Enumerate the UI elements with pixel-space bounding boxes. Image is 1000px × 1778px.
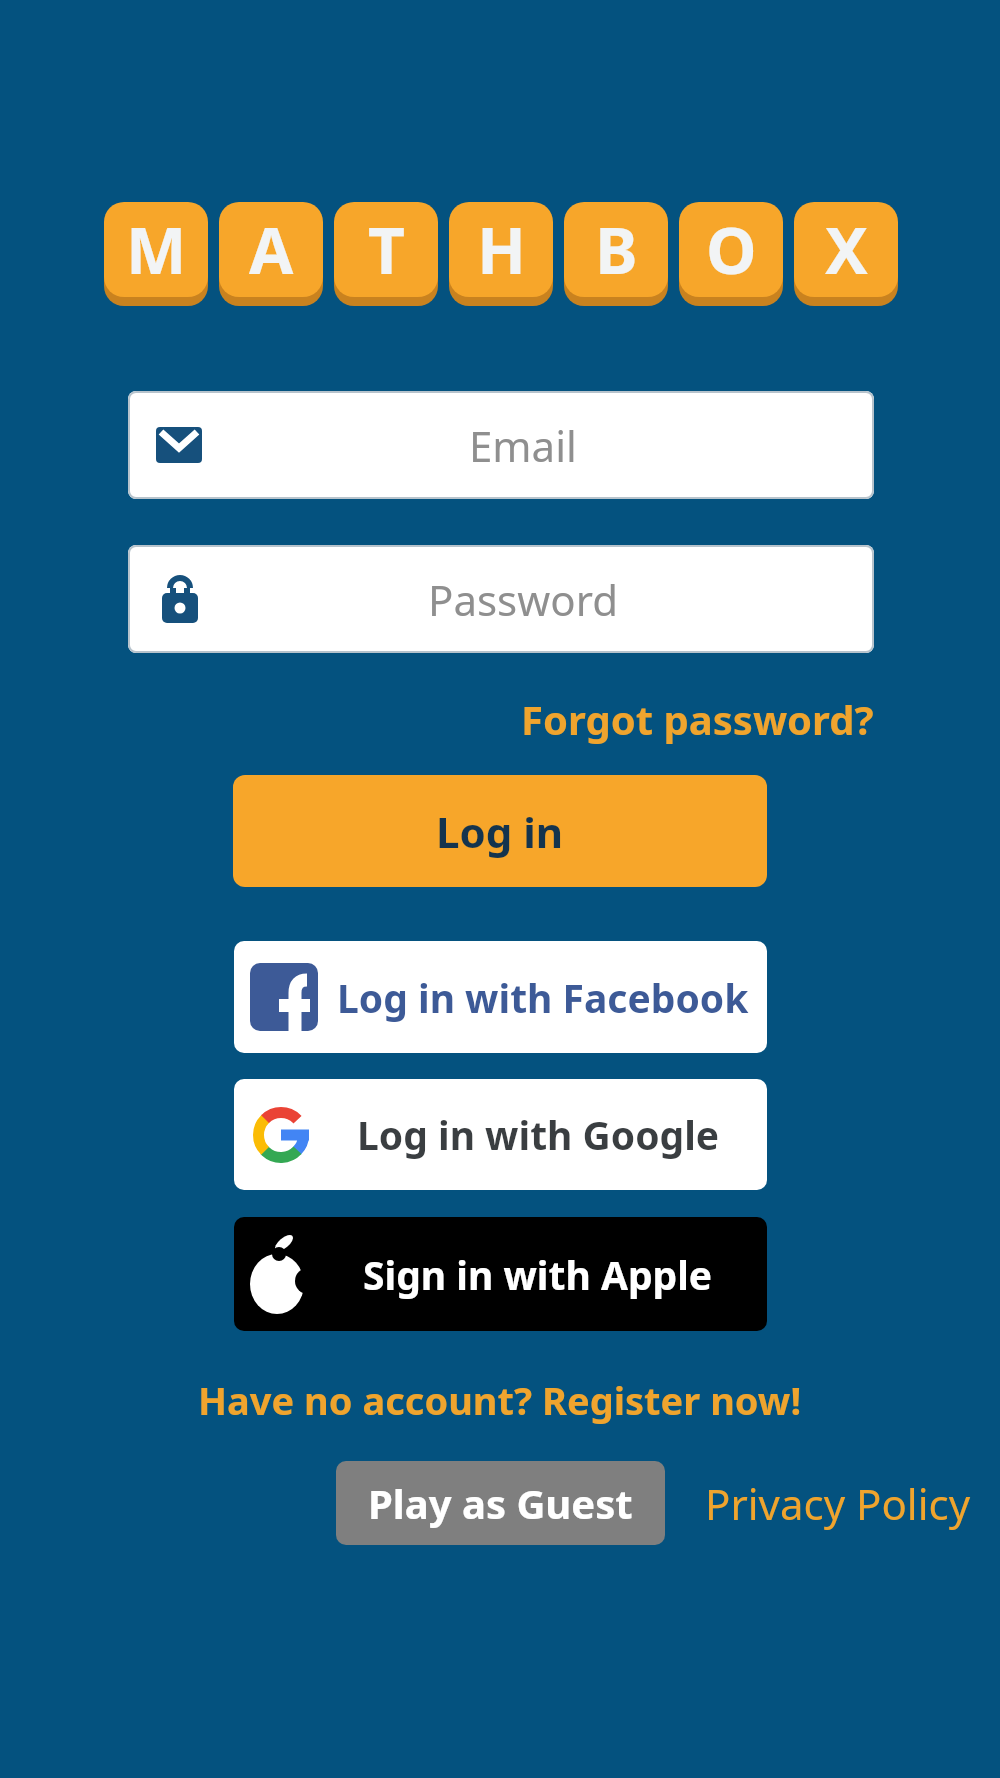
button[interactable]: Forgot password?: [521, 692, 874, 746]
button[interactable]: Password: [128, 545, 874, 653]
staticText: Play as Guest: [368, 1476, 633, 1530]
button[interactable]: Have no account? Register now!: [198, 1374, 802, 1426]
staticText: Password: [428, 571, 618, 628]
staticText: Log in: [436, 803, 564, 860]
button[interactable]: Log in: [233, 775, 767, 887]
button[interactable]: Log in with Google: [234, 1079, 767, 1190]
staticText: O: [706, 206, 757, 293]
button[interactable]: Log in with Facebook: [234, 941, 767, 1053]
staticText: T: [368, 206, 405, 293]
staticText: H: [477, 206, 526, 293]
button[interactable]: Privacy Policy: [705, 1475, 971, 1532]
staticText: B: [595, 206, 638, 293]
staticText: Log in with Facebook: [337, 971, 749, 1024]
staticText: Log in with Google: [357, 1108, 720, 1161]
staticText: X: [825, 206, 868, 293]
button[interactable]: Play as Guest: [336, 1461, 665, 1545]
staticText: Sign in with Apple: [363, 1248, 713, 1301]
staticText: M: [126, 206, 187, 293]
button[interactable]: Email: [128, 391, 874, 499]
button[interactable]: Sign in with Apple: [234, 1217, 767, 1331]
staticText: Email: [469, 417, 577, 474]
staticText: A: [249, 206, 294, 293]
